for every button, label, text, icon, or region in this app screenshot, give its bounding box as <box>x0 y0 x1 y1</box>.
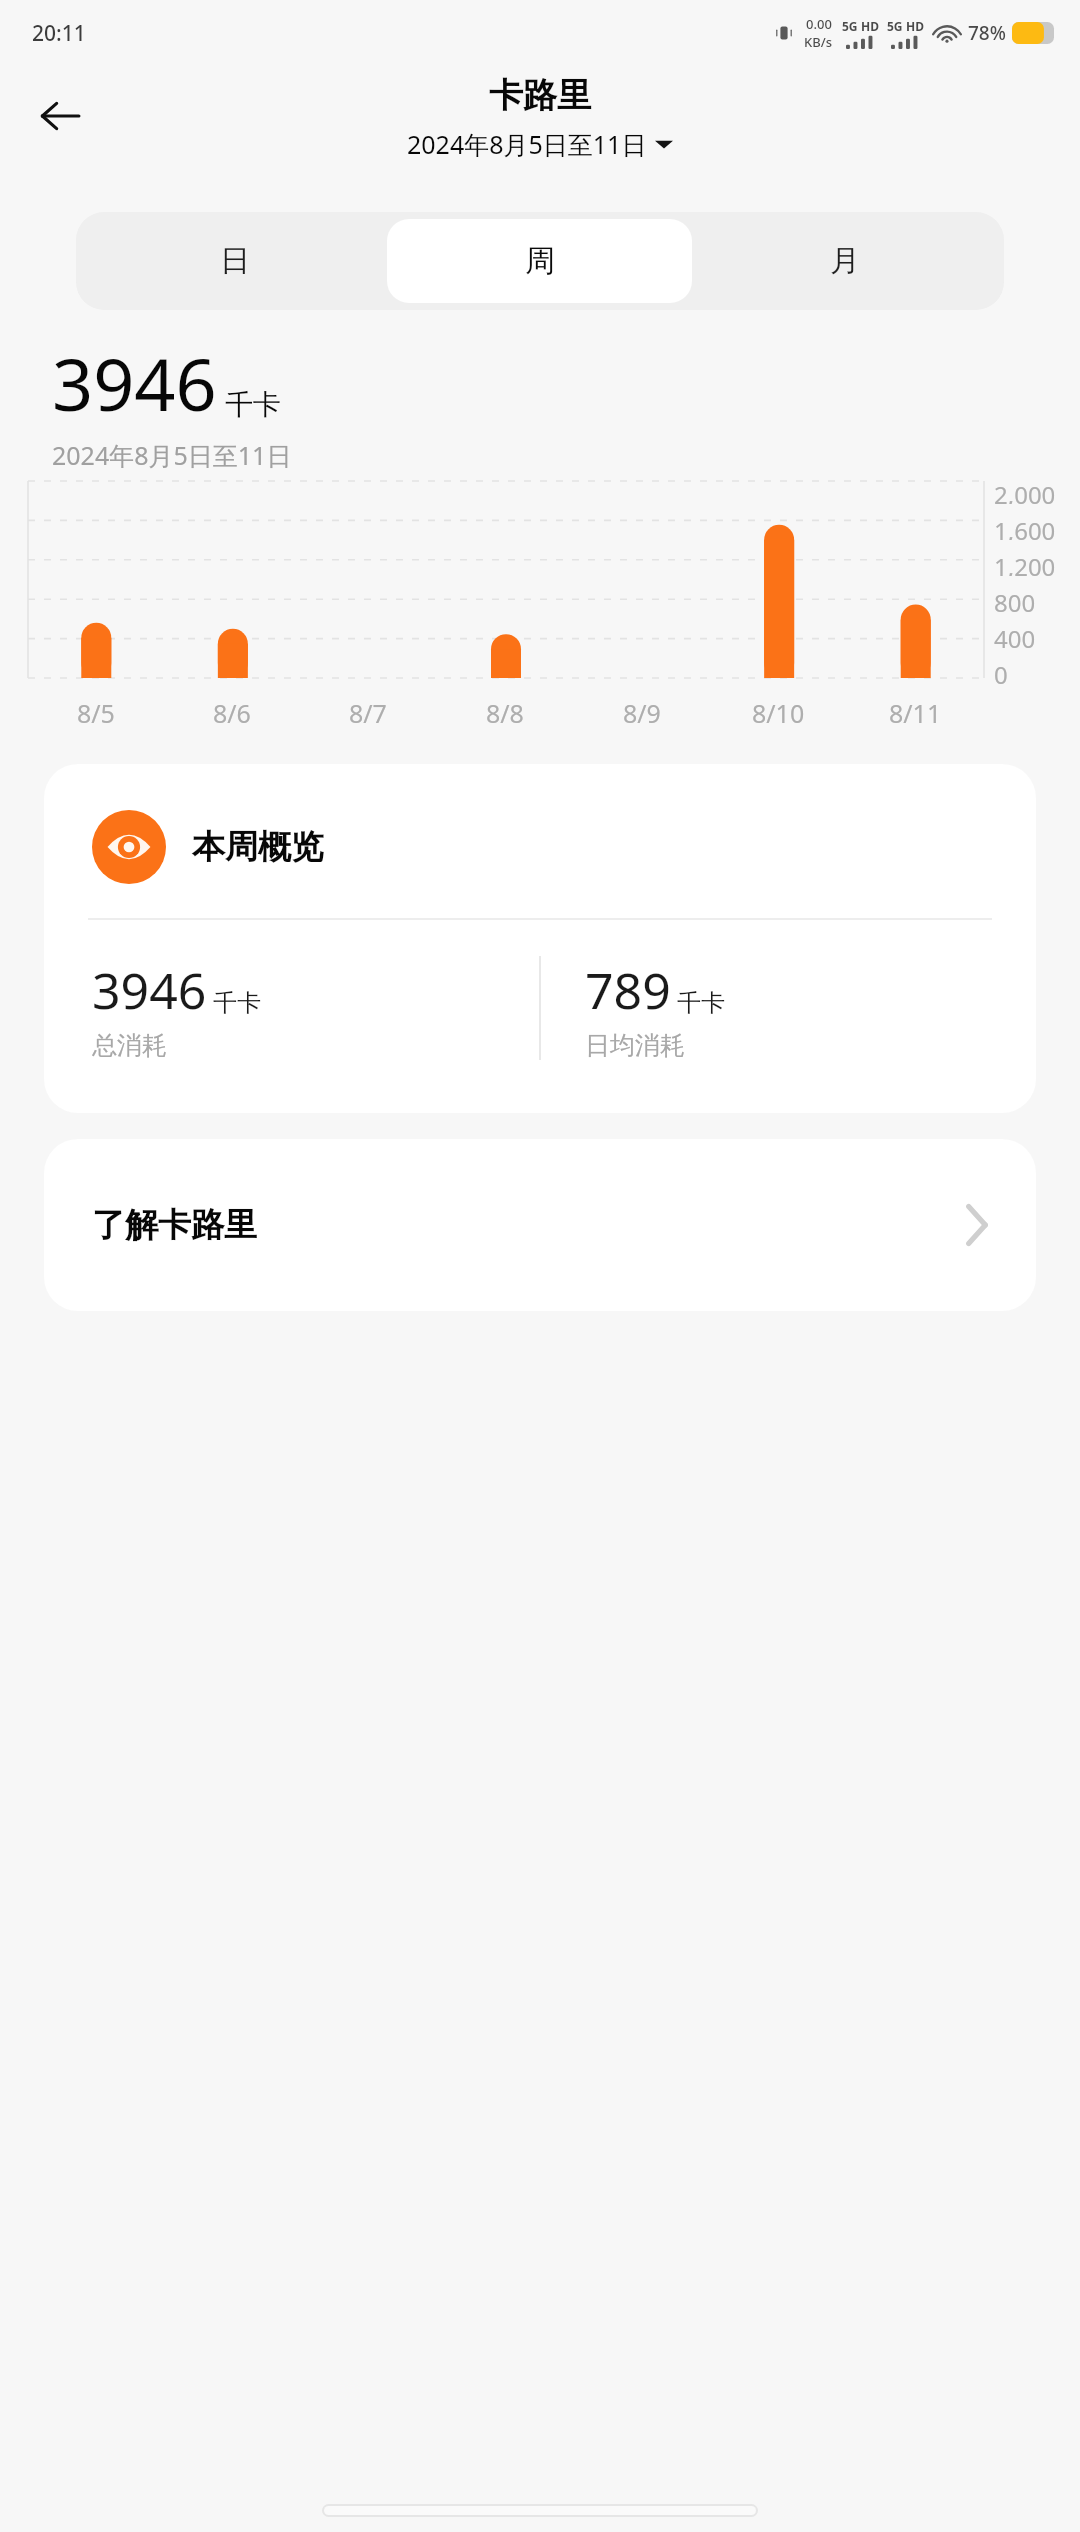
staticText: 1,200 <box>994 550 1056 576</box>
staticText: 8/6 <box>213 696 251 730</box>
staticText: 5G <box>887 18 903 34</box>
staticText: KB/s <box>804 33 833 51</box>
staticText: 2024年8月5日至11日 <box>407 127 647 161</box>
staticText: 800 <box>994 586 1036 612</box>
button[interactable]: 周 <box>387 219 692 303</box>
staticText: 8/8 <box>486 696 524 730</box>
staticText: 千卡 <box>213 988 261 1018</box>
staticText: HD <box>906 18 924 34</box>
staticText: 8/10 <box>752 696 805 730</box>
staticText: 8/9 <box>623 696 661 730</box>
button[interactable]: 本周概览 <box>44 764 1036 1113</box>
staticText: 78% <box>968 20 1006 46</box>
staticText: 千卡 <box>677 988 725 1018</box>
button[interactable]: 月 <box>692 219 997 303</box>
staticText: 千卡 <box>225 387 281 422</box>
staticText: 8/5 <box>77 696 115 730</box>
staticText: 1,600 <box>994 514 1056 540</box>
button[interactable]: 返回 <box>24 80 96 152</box>
staticText: 日 <box>220 242 250 280</box>
button[interactable]: 了解卡路里 <box>44 1139 1036 1311</box>
staticText: 789 <box>585 956 671 1024</box>
staticText: 了解卡路里 <box>92 1204 257 1246</box>
staticText: 总消耗 <box>92 1030 167 1061</box>
staticText: 8/11 <box>889 696 942 730</box>
staticText: 0 <box>994 658 1008 684</box>
staticText: 0.00 <box>806 15 832 33</box>
staticText: 卡路里 <box>489 74 591 117</box>
staticText: 2,000 <box>994 478 1056 504</box>
staticText: 8/7 <box>349 696 387 730</box>
staticText: 20:11 <box>32 19 86 48</box>
staticText: 400 <box>994 622 1036 648</box>
staticText: 5G <box>842 18 858 34</box>
button[interactable]: 日 <box>83 219 387 303</box>
staticText: 周 <box>525 242 555 280</box>
staticText: 3946 <box>52 334 217 432</box>
staticText: 月 <box>830 242 860 280</box>
staticText: 3946 <box>92 956 207 1024</box>
staticText: 本周概览 <box>192 826 324 868</box>
button[interactable]: 2024年8月5日至11日 <box>403 125 677 163</box>
staticText: HD <box>861 18 879 34</box>
staticText: 日均消耗 <box>585 1030 685 1061</box>
staticText: 2024年8月5日至11日 <box>52 438 292 472</box>
